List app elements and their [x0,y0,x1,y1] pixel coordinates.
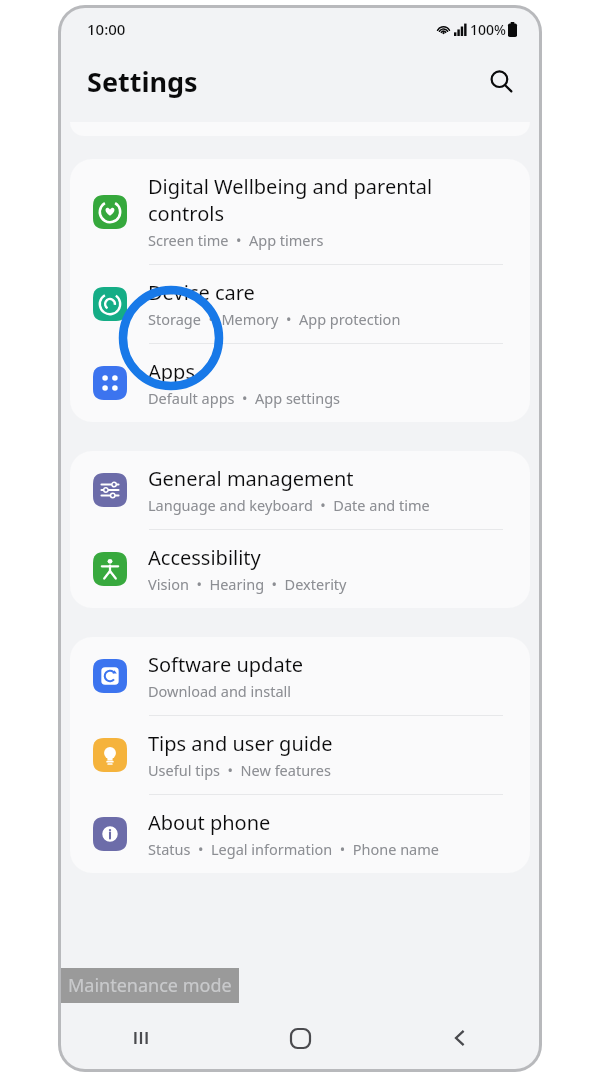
staticText: Download and install [148,681,292,701]
staticText: Tips and user guide [148,730,333,757]
staticText: Language and keyboard • Date and time [148,495,430,515]
button[interactable]: Search [479,59,523,103]
staticText: 100% [470,20,506,39]
staticText: Useful tips • New features [148,760,331,780]
staticText: Device care [148,279,255,306]
button[interactable]: About phone [70,795,530,873]
button[interactable]: Device care [70,265,530,343]
staticText: Vision • Hearing • Dexterity [148,574,347,594]
staticText: Software update [148,651,304,678]
button[interactable]: Accessibility [70,530,530,608]
button[interactable]: General management [70,451,530,529]
button[interactable]: Apps [70,344,530,422]
staticText: Accessibility [148,544,261,571]
staticText: Default apps • App settings [148,388,341,408]
button[interactable]: Software update [70,637,530,715]
button[interactable]: Digital Wellbeing and parental controls [70,159,530,264]
button[interactable]: Home [221,1007,380,1069]
staticText: Storage • Memory • App protection [148,309,401,329]
staticText: Apps [148,358,195,385]
staticText: About phone [148,809,271,836]
staticText: Screen time • App timers [148,230,324,250]
staticText: 10:00 [87,19,126,39]
button[interactable]: Recents [61,1007,221,1069]
staticText: General management [148,465,354,492]
staticText: Digital Wellbeing and parental controls [148,173,433,227]
button[interactable]: Tips and user guide [70,716,530,794]
button[interactable]: Back [380,1007,539,1069]
staticText: Status • Legal information • Phone name [148,839,439,859]
staticText: Settings [87,63,198,100]
staticText: Maintenance mode [68,973,232,998]
